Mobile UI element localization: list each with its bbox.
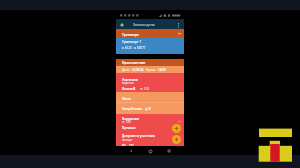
staticText: 14:20	[158, 68, 166, 72]
button[interactable]: Происшествие	[116, 59, 184, 66]
other: Collapse section	[178, 32, 181, 35]
staticText: паспорт	[122, 138, 133, 142]
staticText: Документы участника	[122, 134, 155, 138]
button[interactable]: Add participant	[172, 124, 181, 133]
button[interactable]: Add record	[117, 20, 126, 29]
staticText: Транспорт	[122, 32, 139, 36]
button[interactable]: Home	[146, 147, 154, 155]
staticText: Участники	[122, 78, 138, 82]
button[interactable]: Add document	[172, 135, 181, 144]
staticText: Дата:	[122, 68, 130, 72]
staticText: Улица Ленина	[122, 107, 142, 111]
staticText: ст. 12.8	[140, 87, 149, 91]
button[interactable]: Улица Ленина	[116, 102, 184, 114]
button[interactable]: Транспорт 1	[116, 38, 184, 54]
staticText: А123	[125, 46, 132, 50]
button[interactable]: Транспорт	[116, 29, 184, 38]
staticText: Транспорт 1	[122, 40, 142, 44]
staticText: Время:	[146, 68, 156, 72]
button[interactable]: Recents	[165, 147, 173, 155]
staticText: Нарушение	[122, 117, 140, 121]
button[interactable]: Back	[127, 147, 135, 155]
staticText: Записи дела	[133, 22, 155, 27]
button[interactable]: Место	[116, 92, 184, 102]
staticText: БВ777	[137, 46, 146, 50]
staticText: водитель	[122, 81, 134, 85]
staticText: 12.03.24	[132, 68, 144, 72]
staticText: Происшествие	[122, 61, 146, 65]
staticText: ст. 12.8	[122, 120, 131, 124]
button[interactable]: More options	[174, 20, 183, 29]
staticText: ВУ	[122, 144, 126, 148]
staticText: Протокол	[122, 126, 136, 130]
staticText: Иванов И.	[122, 87, 137, 91]
staticText: д.15	[145, 107, 151, 111]
button[interactable]: Дата:	[116, 66, 184, 73]
staticText: СТС	[129, 144, 135, 148]
staticText: Место	[122, 97, 131, 101]
button[interactable]: Участники	[116, 73, 184, 92]
